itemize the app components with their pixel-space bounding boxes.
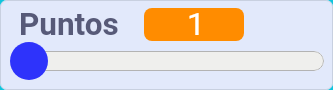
button[interactable] [144,8,244,41]
staticText: Puntos [19,6,119,43]
staticText: 1 [187,5,205,43]
button[interactable]: Slider thumb [10,42,48,80]
